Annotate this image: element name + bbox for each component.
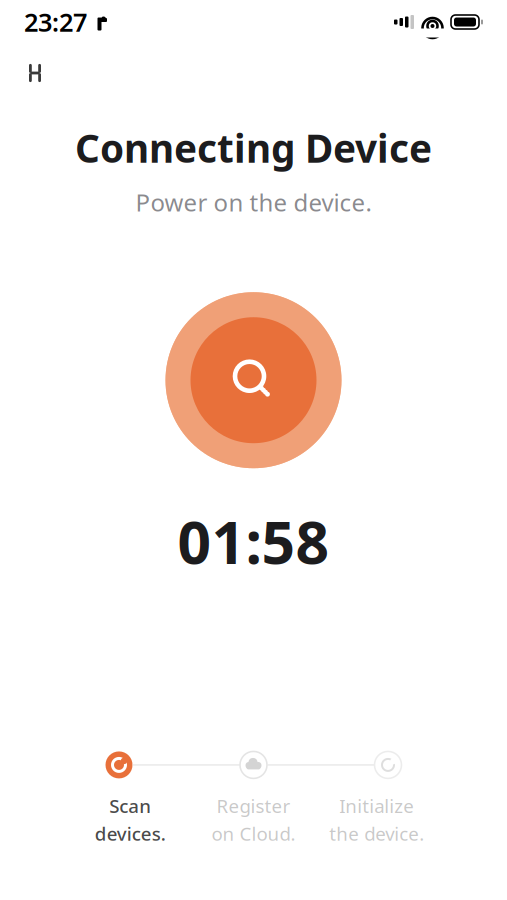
staticText: devices.: [95, 821, 166, 846]
button[interactable]: Close: [10, 48, 60, 98]
staticText: on Cloud.: [211, 821, 295, 846]
staticText: Power on the device.: [135, 186, 371, 218]
staticText: Initialize: [339, 793, 414, 818]
staticText: Connecting Device: [75, 122, 432, 173]
staticText: Scan: [109, 793, 151, 818]
staticText: 01:58: [177, 502, 329, 580]
staticText: the device.: [329, 821, 424, 846]
staticText: Register: [216, 793, 290, 818]
staticText: 23:27: [24, 5, 87, 39]
